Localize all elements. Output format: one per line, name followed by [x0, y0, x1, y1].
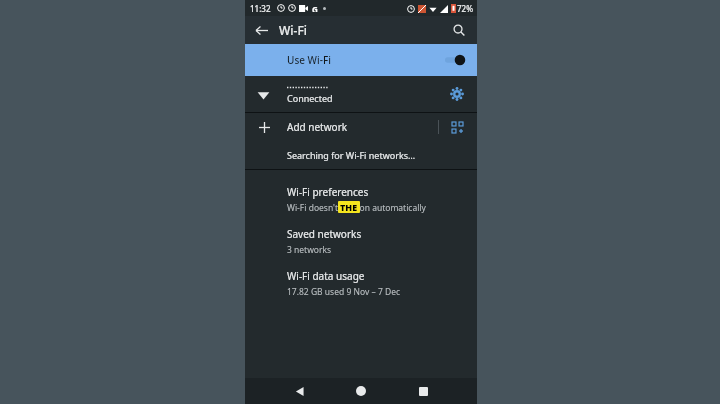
- staticText: Wi-Fi preferences: [287, 185, 369, 199]
- staticText: Add network: [287, 120, 348, 134]
- staticText: Connected: [287, 92, 333, 104]
- staticText: Wi-Fi: [279, 22, 307, 38]
- staticText: Use Wi-Fi: [287, 53, 331, 67]
- staticText: Saved networks: [287, 227, 362, 241]
- button[interactable]: Wi-Fi preferences: [245, 178, 477, 220]
- button[interactable]: Saved networks: [245, 220, 477, 262]
- button[interactable]: Search: [447, 18, 471, 42]
- button[interactable]: Scan QR code: [447, 117, 467, 137]
- staticText: 11:32: [250, 3, 271, 14]
- button[interactable]: Back: [289, 381, 309, 401]
- staticText: Wi-Fi doesn't turn on automatically: [287, 202, 426, 214]
- button[interactable]: Connected: [245, 76, 477, 112]
- button[interactable]: Wi-Fi data usage: [245, 262, 477, 304]
- button[interactable]: Add network: [245, 113, 477, 141]
- staticText: THE: [340, 201, 358, 213]
- staticText: Searching for Wi-Fi networks…: [287, 149, 416, 161]
- button[interactable]: Network settings: [447, 84, 467, 104]
- staticText: 72%: [457, 3, 473, 14]
- button[interactable]: Back: [249, 18, 273, 42]
- button[interactable]: Use Wi-Fi: [245, 44, 477, 76]
- button[interactable]: Recent apps: [413, 381, 433, 401]
- staticText: 3 networks: [287, 244, 332, 256]
- staticText: G: [312, 4, 318, 12]
- staticText: 17.82 GB used 9 Nov – 7 Dec: [287, 286, 401, 298]
- button[interactable]: Home: [350, 380, 372, 402]
- staticText: Wi-Fi data usage: [287, 269, 365, 283]
